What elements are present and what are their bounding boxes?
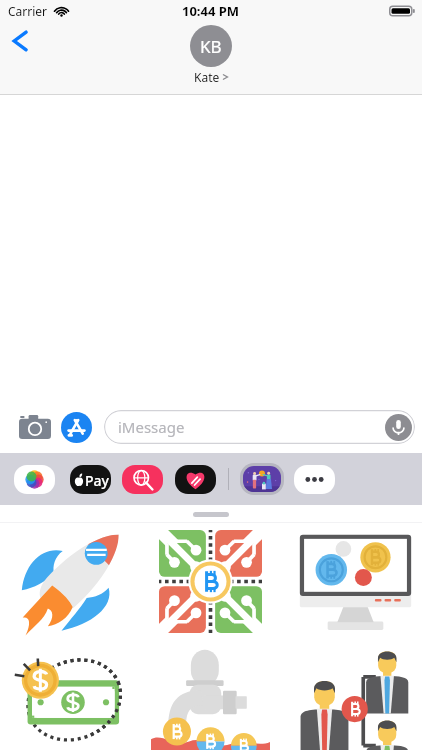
staticText: iMessage	[118, 417, 185, 437]
button[interactable]: Rocket sticker	[0, 522, 140, 641]
button[interactable]: iMessage	[104, 410, 415, 444]
button[interactable]: App Store	[61, 412, 92, 443]
button[interactable]: Apple Pay	[70, 465, 111, 494]
button[interactable]: Money sticker	[0, 641, 140, 750]
staticText: Pay	[85, 471, 109, 489]
button[interactable]: Images	[122, 465, 163, 494]
staticText: Carrier	[8, 3, 48, 19]
button[interactable]: Back	[3, 24, 37, 58]
button[interactable]: Photos	[14, 465, 55, 494]
staticText: 10:44 PM	[182, 2, 240, 20]
staticText: Kate	[194, 69, 220, 85]
button[interactable]: KB	[190, 25, 232, 85]
button[interactable]: Crypto monitor sticker	[281, 522, 422, 641]
staticText: KB	[200, 35, 222, 58]
button[interactable]: Crypto stickers	[240, 463, 284, 495]
button[interactable]: Bitcoin faucet sticker	[140, 641, 281, 750]
button[interactable]: Dictate	[385, 414, 412, 441]
button[interactable]: More apps	[294, 465, 335, 494]
button[interactable]: Bitcoin circuit sticker	[140, 522, 281, 641]
button[interactable]: Bitcoin network sticker	[281, 641, 422, 750]
button[interactable]: Digital Touch	[175, 465, 216, 494]
button[interactable]: Camera	[18, 410, 52, 444]
